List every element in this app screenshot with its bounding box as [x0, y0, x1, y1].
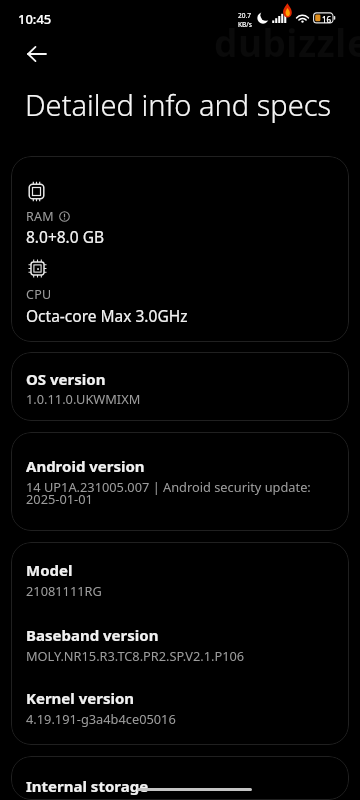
staticText: OS version	[26, 369, 106, 389]
staticText: Octa-core Max 3.0GHz	[26, 305, 188, 326]
staticText: RAM	[26, 208, 55, 225]
staticText: 14 UP1A.231005.007 | Android security up…	[26, 478, 335, 508]
staticText: Detailed info and specs	[25, 85, 332, 124]
button[interactable]: Android version	[11, 432, 349, 531]
staticText: Baseband version	[26, 625, 159, 645]
staticText: Android version	[26, 456, 145, 476]
staticText: 8.0+8.0 GB	[26, 226, 105, 247]
button[interactable]: RAM	[11, 156, 349, 342]
staticText: Kernel version	[26, 688, 135, 708]
button[interactable]: Model	[11, 542, 349, 745]
button[interactable]: Internal storage	[11, 756, 349, 800]
staticText: KB/s	[238, 20, 252, 29]
staticText: 1.0.11.0.UKWMIXM	[26, 390, 141, 407]
button[interactable]: OS version	[11, 352, 349, 421]
staticText: Internal storage	[26, 776, 149, 796]
staticText: dubizzle	[214, 17, 360, 67]
staticText: 10:45	[18, 10, 52, 28]
staticText: 21081111RG	[26, 582, 102, 599]
button[interactable]: Back	[15, 32, 59, 76]
staticText: Model	[26, 560, 73, 580]
staticText: 4.19.191-g3a4b4ce05016	[26, 710, 176, 727]
staticText: MOLY.NR15.R3.TC8.PR2.SP.V2.1.P106	[26, 647, 245, 664]
staticText: 16	[322, 14, 332, 25]
staticText: CPU	[26, 286, 52, 303]
staticText: 20.7	[238, 11, 251, 20]
